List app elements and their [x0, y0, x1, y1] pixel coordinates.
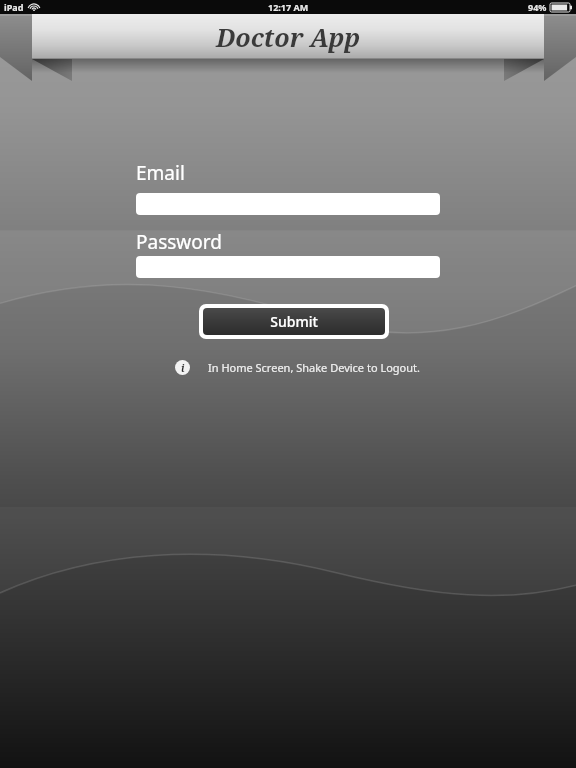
staticText: i: [181, 361, 185, 375]
button[interactable]: Email input: [136, 193, 440, 215]
button[interactable]: Submit: [199, 304, 389, 339]
staticText: In Home Screen, Shake Device to Logout.: [208, 360, 420, 375]
staticText: 94%: [528, 1, 547, 13]
staticText: iPad: [4, 1, 24, 13]
staticText: Email: [136, 160, 185, 186]
staticText: Doctor App: [216, 20, 360, 54]
other: Information: [175, 360, 190, 375]
staticText: Submit: [270, 312, 318, 331]
staticText: Password: [136, 229, 222, 255]
staticText: 12:17 AM: [268, 1, 309, 13]
button[interactable]: Password input: [136, 256, 440, 278]
